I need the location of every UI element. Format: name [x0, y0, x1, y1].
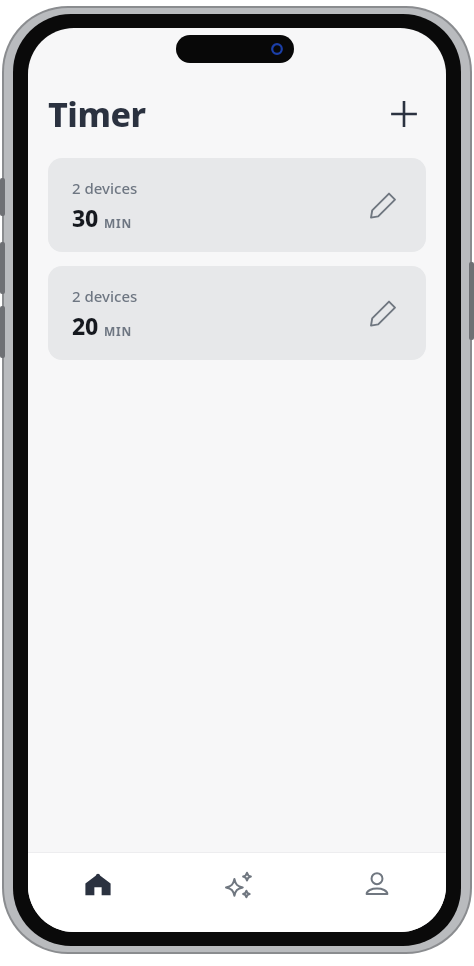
staticText: 2 devices — [72, 178, 138, 198]
staticText: MIN — [104, 215, 133, 231]
button[interactable]: Profile — [307, 852, 446, 932]
button[interactable]: 2 devices — [48, 266, 426, 360]
button[interactable]: Edit timer — [362, 292, 404, 334]
button[interactable]: Discover — [168, 852, 307, 932]
button[interactable]: Add timer — [382, 92, 426, 136]
staticText: MIN — [104, 323, 133, 339]
staticText: 30 — [72, 202, 98, 233]
button[interactable]: 2 devices — [48, 158, 426, 252]
staticText: 20 — [72, 310, 98, 341]
staticText: 2 devices — [72, 286, 138, 306]
button[interactable]: Home — [28, 852, 168, 932]
button[interactable]: Edit timer — [362, 184, 404, 226]
staticText: Timer — [48, 91, 146, 137]
